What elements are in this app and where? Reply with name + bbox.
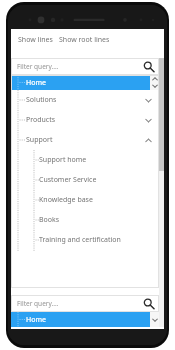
- staticText: Home: [26, 78, 150, 88]
- button[interactable]: Support: [11, 130, 159, 150]
- button[interactable]: Knowledge base: [11, 190, 159, 210]
- button[interactable]: Show lines: [17, 34, 54, 46]
- button[interactable]: Show root lines: [58, 34, 111, 46]
- button[interactable]: Customer Service: [11, 170, 159, 190]
- button[interactable]: Books: [11, 210, 159, 230]
- button[interactable]: Filter query....: [11, 295, 159, 312]
- staticText: Knowledge base: [39, 195, 155, 205]
- button[interactable]: Solutions: [11, 90, 159, 110]
- button[interactable]: Filter query....: [11, 58, 159, 75]
- staticText: Training and certification: [39, 235, 155, 245]
- button[interactable]: Expand: [141, 93, 155, 107]
- button[interactable]: Home: [11, 75, 159, 90]
- button[interactable]: Scroll page: [159, 58, 164, 327]
- button[interactable]: Products: [11, 110, 159, 130]
- staticText: Filter query....: [17, 299, 143, 308]
- button[interactable]: Collapse: [141, 133, 155, 147]
- staticText: Solutions: [26, 95, 141, 105]
- staticText: Home: [26, 315, 150, 325]
- staticText: Filter query....: [17, 62, 143, 71]
- staticText: Show root lines: [59, 35, 110, 45]
- button[interactable]: Support home: [11, 150, 159, 170]
- button[interactable]: Home: [11, 312, 159, 327]
- staticText: Products: [26, 115, 141, 125]
- button[interactable]: Scroll list: [150, 75, 159, 90]
- staticText: Books: [39, 215, 155, 225]
- staticText: Customer Service: [39, 175, 155, 185]
- staticText: Support: [26, 135, 141, 145]
- button[interactable]: Training and certification: [11, 230, 159, 250]
- staticText: Show lines: [18, 35, 53, 45]
- button[interactable]: Scroll list: [150, 312, 159, 327]
- staticText: Support home: [39, 155, 155, 165]
- button[interactable]: Expand: [141, 113, 155, 127]
